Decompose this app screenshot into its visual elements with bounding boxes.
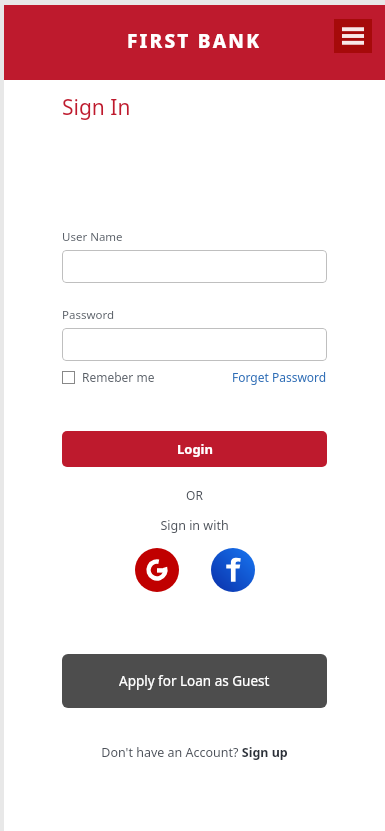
- staticText: Remeber me: [82, 369, 155, 385]
- staticText: Forget Password: [232, 369, 327, 385]
- staticText: User Name: [62, 229, 123, 245]
- button[interactable]: Login: [62, 431, 327, 467]
- staticText: Sign In: [62, 93, 131, 122]
- staticText: Apply for Loan as Guest: [119, 672, 270, 690]
- button[interactable]: Open menu: [334, 19, 372, 53]
- button[interactable]: Don't have an Account? Sign up: [62, 744, 327, 761]
- button[interactable]: Sign in with Google: [135, 548, 179, 592]
- button[interactable]: Sign in with Facebook: [211, 548, 255, 592]
- staticText: Sign in with: [62, 517, 327, 534]
- staticText: FIRST BANK: [127, 28, 262, 54]
- staticText: Login: [177, 440, 213, 458]
- button[interactable]: Password field: [62, 328, 327, 361]
- button[interactable]: User Name field: [62, 250, 327, 283]
- button[interactable]: Forget Password: [232, 369, 327, 385]
- button[interactable]: Apply for Loan as Guest: [62, 654, 327, 708]
- staticText: Don't have an Account? Sign up: [101, 744, 288, 761]
- button[interactable]: Remeber me: [62, 369, 155, 385]
- staticText: OR: [62, 487, 327, 503]
- staticText: Password: [62, 307, 115, 323]
